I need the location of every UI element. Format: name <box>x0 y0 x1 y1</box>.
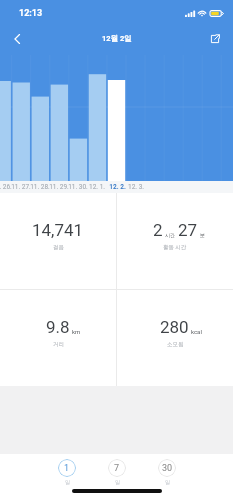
button[interactable]: 280 <box>117 290 233 386</box>
staticText: 12월 2일 <box>102 34 132 43</box>
button[interactable]: 9.8 <box>0 290 116 386</box>
staticText: 280 <box>160 317 189 337</box>
staticText: 12:13 <box>19 8 43 19</box>
button[interactable]: 7 <box>108 459 126 485</box>
staticText: km <box>72 328 81 335</box>
button[interactable]: Share <box>203 27 227 51</box>
staticText: 2 <box>153 220 163 240</box>
staticText: 1 <box>64 463 70 474</box>
staticText: 분 <box>200 232 205 238</box>
staticText: 7 <box>114 463 120 474</box>
staticText: 걸음 <box>53 244 64 251</box>
staticText: 9.8 <box>46 317 70 337</box>
button[interactable]: 1 <box>58 459 76 485</box>
staticText: 30 <box>162 463 173 474</box>
staticText: 11. 28. <box>30 183 50 191</box>
staticText: 14,741 <box>32 220 84 240</box>
staticText: 거리 <box>53 341 64 348</box>
staticText: 시간 <box>165 232 175 238</box>
button[interactable]: Back <box>5 27 29 51</box>
staticText: 27 <box>178 220 198 240</box>
staticText: 11. 30. <box>68 183 88 191</box>
staticText: 일 <box>165 479 170 485</box>
staticText: 11. 26. <box>0 183 12 191</box>
staticText: 소모됨 <box>167 341 184 348</box>
staticText: 활동 시간 <box>163 244 187 251</box>
staticText: 12. 1. <box>89 183 105 191</box>
staticText: kcal <box>191 328 202 335</box>
staticText: 12. 3. <box>128 183 144 191</box>
button[interactable]: 2 <box>117 193 233 289</box>
staticText: 일 <box>65 479 70 485</box>
button[interactable]: 30 <box>158 459 176 485</box>
staticText: 일 <box>115 479 120 485</box>
button[interactable]: 14,741 <box>0 193 116 289</box>
staticText: 11. 27. <box>11 183 31 191</box>
staticText: 11. 29. <box>49 183 69 191</box>
staticText: 12. 2. <box>109 183 126 191</box>
